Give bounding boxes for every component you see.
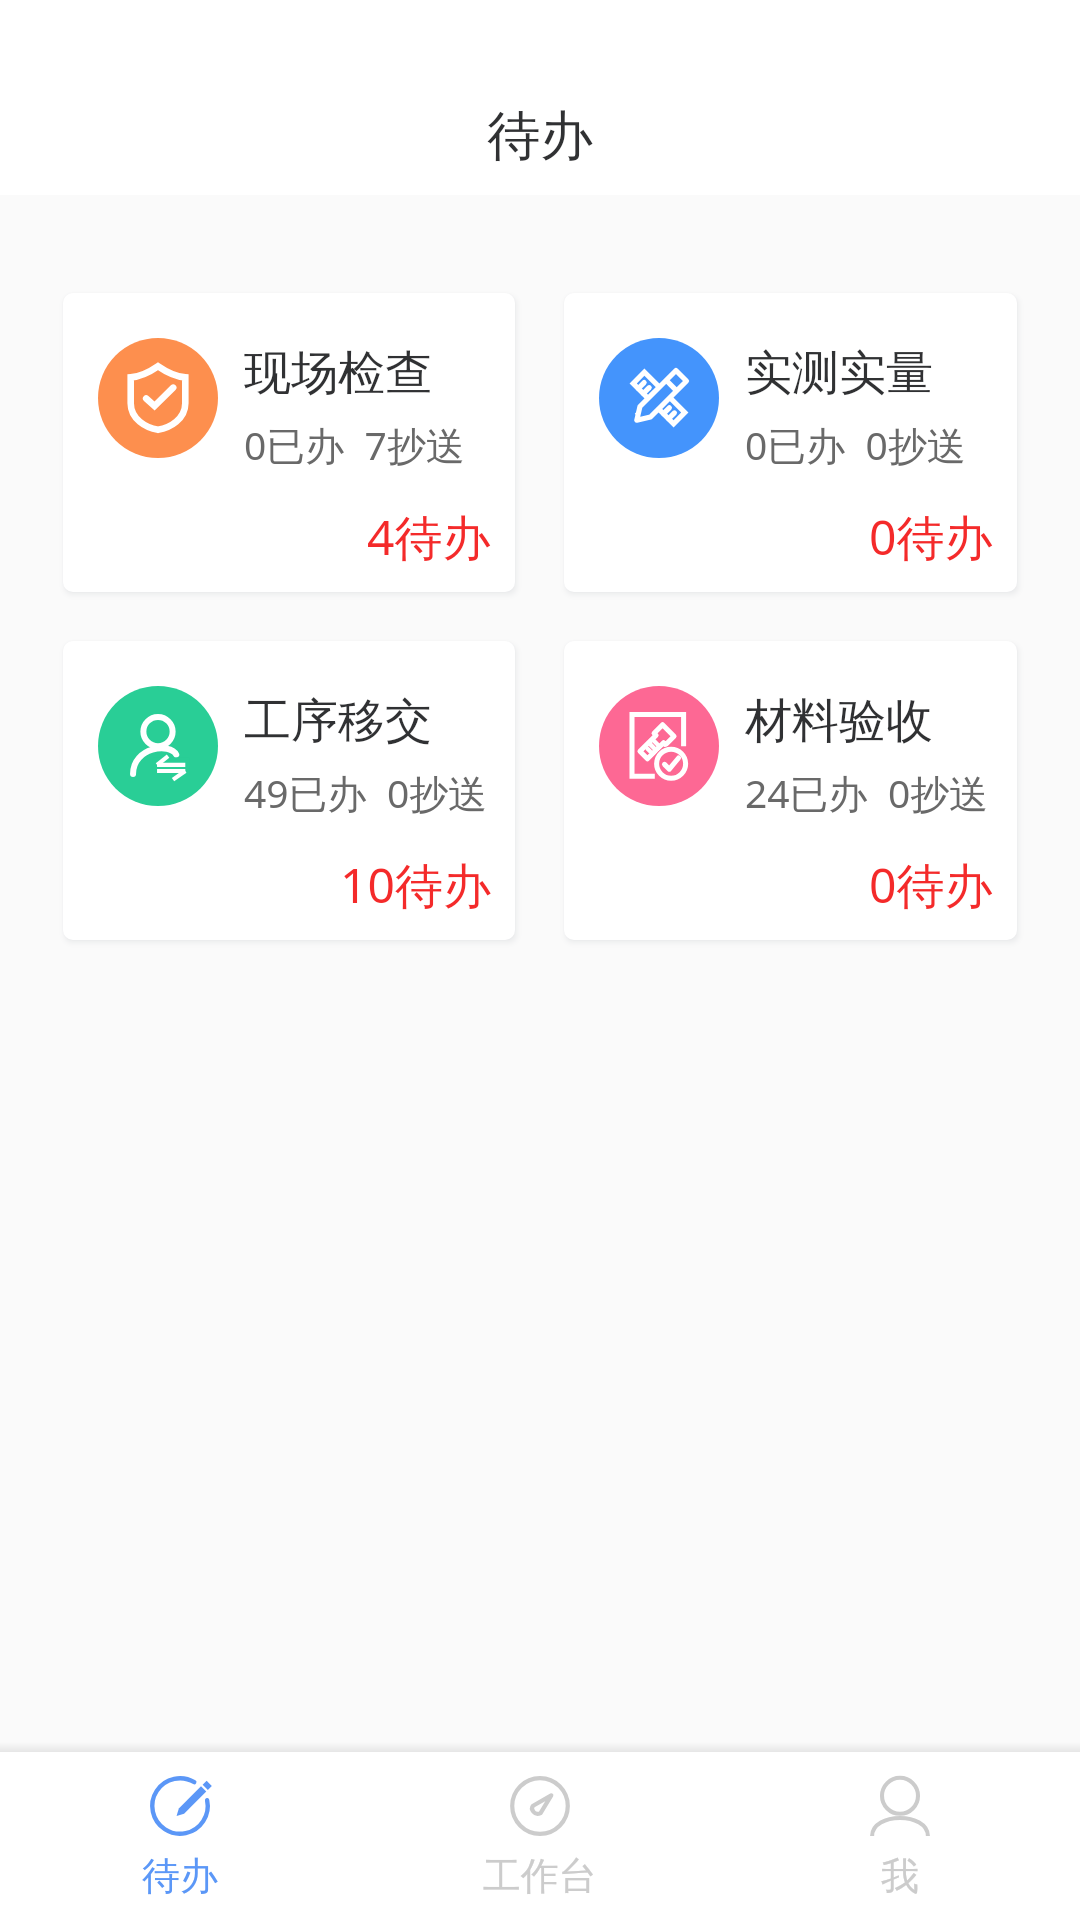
staticText: 现场检查 xyxy=(244,344,432,403)
staticText: 待办 xyxy=(487,103,593,170)
staticText: 待办 xyxy=(142,1852,218,1900)
staticText: 4待办 xyxy=(367,504,491,570)
staticText: 24已办 0抄送 xyxy=(745,766,989,819)
staticText: 49已办 0抄送 xyxy=(244,766,488,819)
button[interactable]: 工序移交 xyxy=(63,641,515,940)
button[interactable]: 工作台 xyxy=(360,1752,720,1920)
staticText: 材料验收 xyxy=(745,692,933,751)
button[interactable]: 实测实量 xyxy=(564,293,1017,592)
staticText: 工序移交 xyxy=(244,692,432,751)
staticText: 工作台 xyxy=(483,1852,597,1900)
button[interactable]: 材料验收 xyxy=(564,641,1017,940)
button[interactable]: 待办 xyxy=(0,1752,360,1920)
staticText: 0待办 xyxy=(869,504,993,570)
button[interactable]: 我 xyxy=(720,1752,1080,1920)
staticText: 0待办 xyxy=(869,852,993,918)
staticText: 我 xyxy=(881,1852,919,1900)
staticText: 0已办 7抄送 xyxy=(244,418,465,471)
staticText: 10待办 xyxy=(340,852,491,918)
staticText: 0已办 0抄送 xyxy=(745,418,966,471)
button[interactable]: 现场检查 xyxy=(63,293,515,592)
staticText: 实测实量 xyxy=(745,344,933,403)
